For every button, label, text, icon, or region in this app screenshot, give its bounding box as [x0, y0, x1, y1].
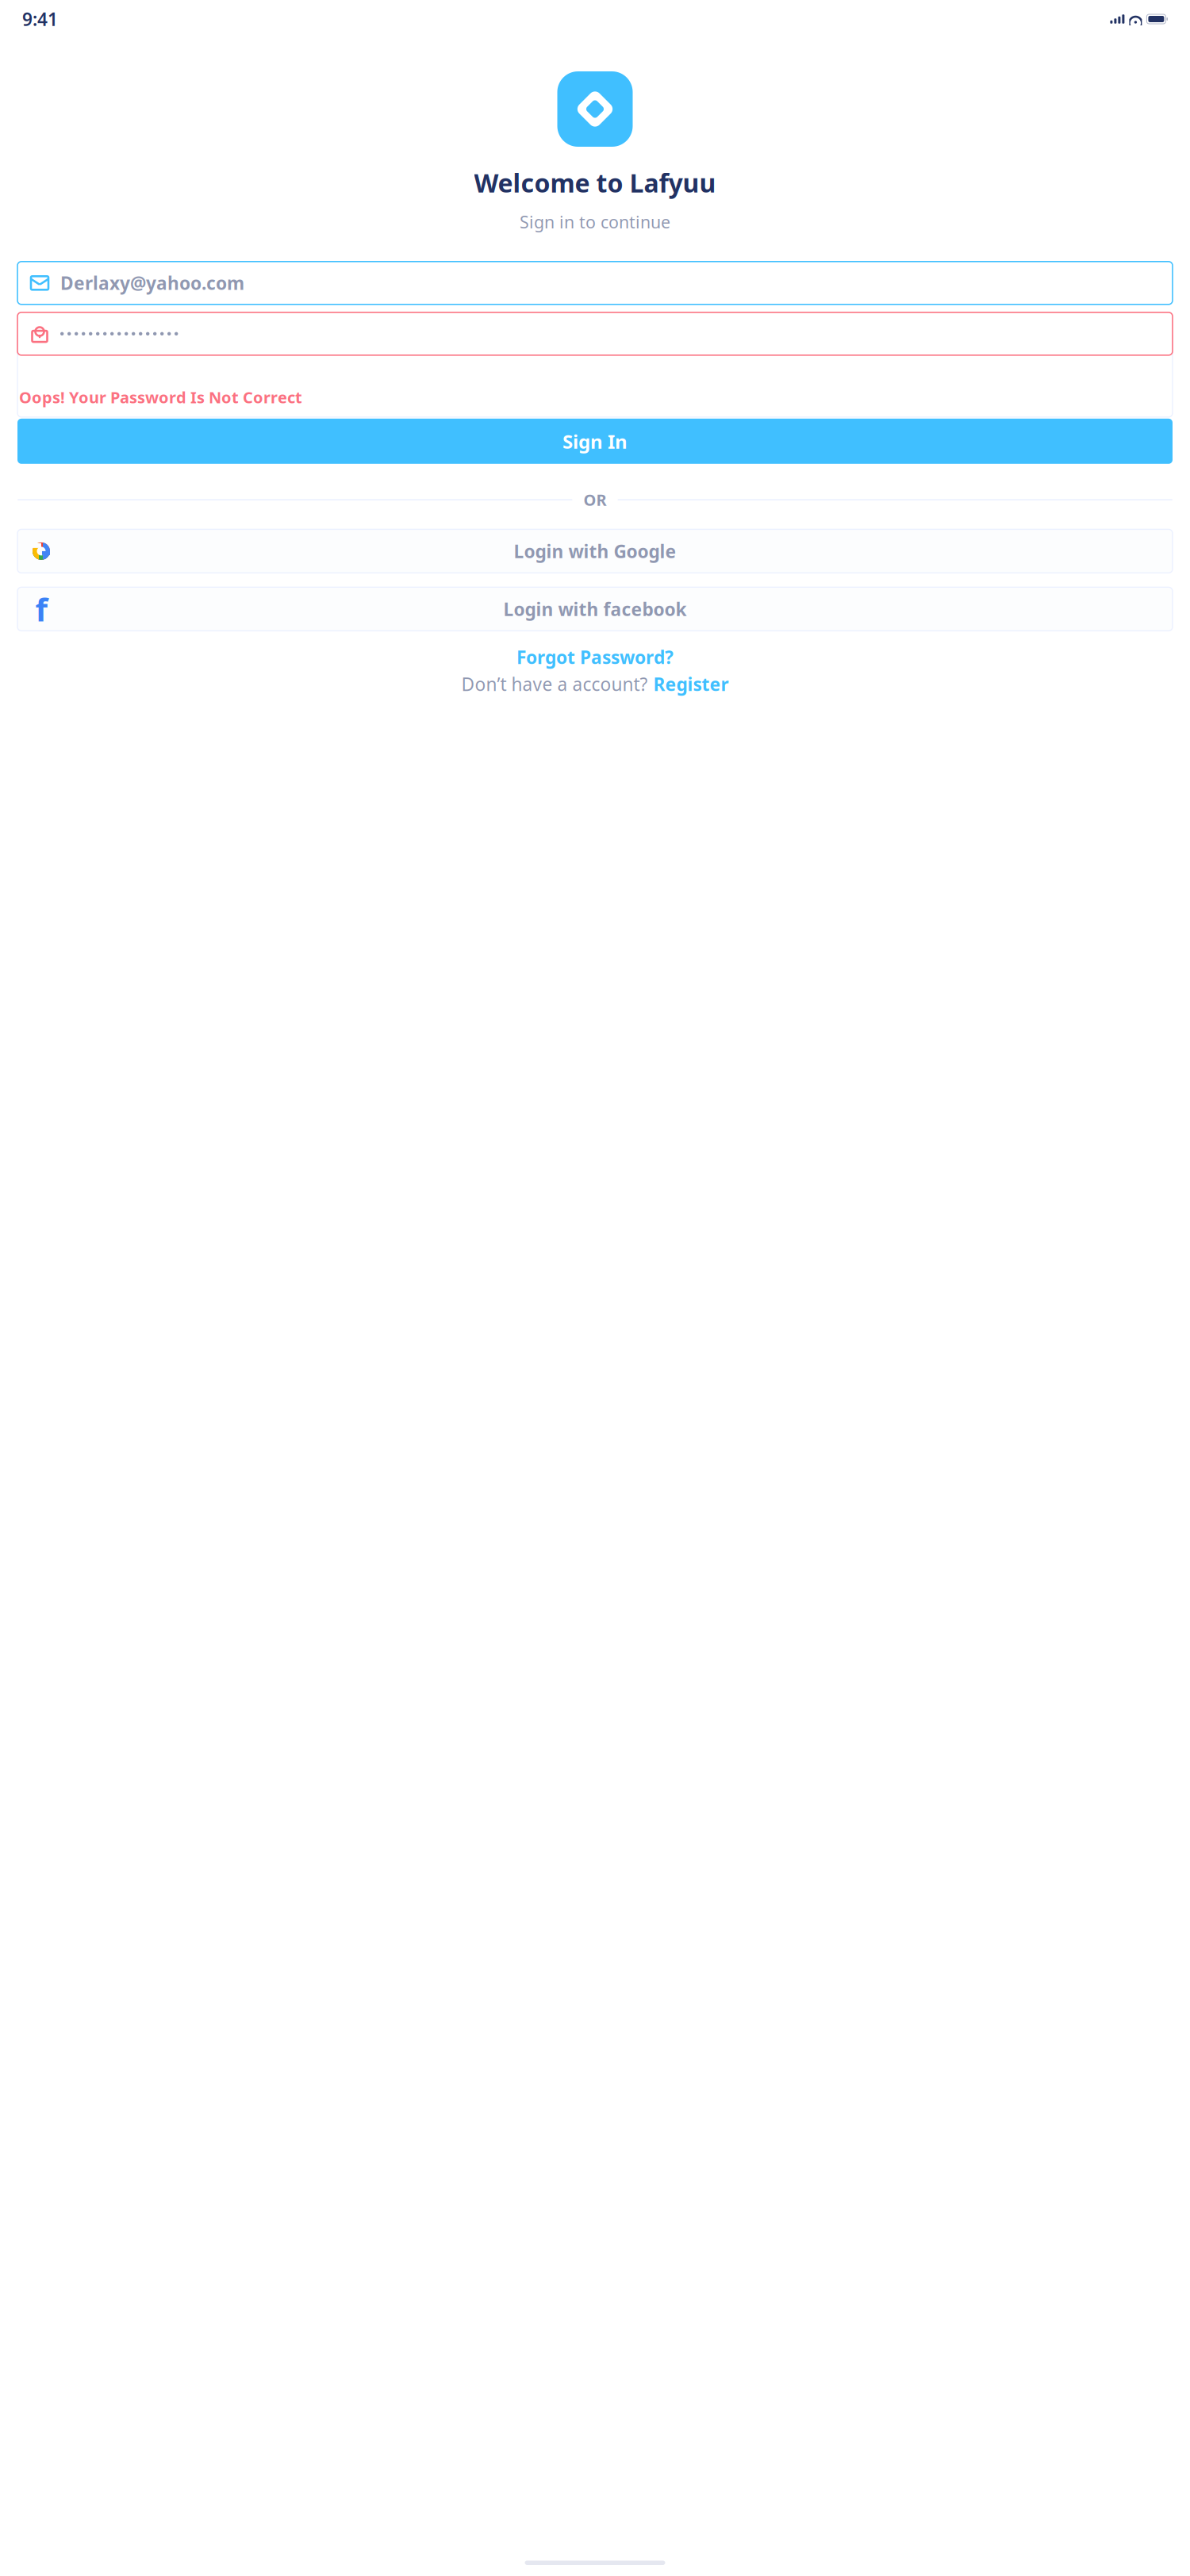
staticText: Login with facebook — [503, 597, 687, 621]
staticText: Don’t have a account? — [461, 672, 648, 696]
button[interactable]: Login with facebook — [17, 587, 1173, 631]
staticText: Sign In — [562, 429, 628, 454]
staticText: Sign in to continue — [520, 211, 670, 233]
staticText: Welcome to Lafyuu — [474, 166, 716, 199]
staticText: Derlaxy@yahoo.com — [60, 271, 244, 295]
staticText: Oops! Your Password Is Not Correct — [19, 387, 302, 408]
staticText: Register — [653, 672, 729, 696]
staticText: OR — [583, 489, 607, 510]
button[interactable]: Login with Google — [17, 529, 1173, 573]
staticText: f — [35, 588, 47, 630]
button[interactable]: Sign In — [17, 419, 1173, 464]
button[interactable]: Forgot Password? — [17, 644, 1173, 670]
staticText: Forgot Password? — [516, 645, 674, 669]
staticText: 9:41 — [22, 7, 58, 31]
button[interactable]: Don’t have a account? — [17, 672, 1173, 696]
staticText: Login with Google — [514, 539, 676, 563]
